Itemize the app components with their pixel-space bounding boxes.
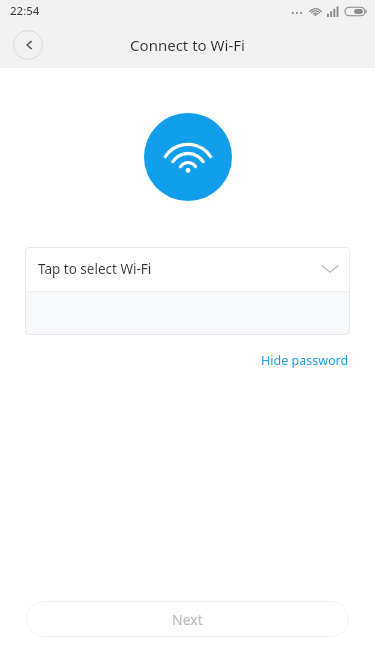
button[interactable]: Back: [13, 30, 43, 60]
staticText: 22:54: [10, 3, 40, 19]
button[interactable]: Next: [26, 601, 349, 637]
staticText: Hide password: [261, 352, 349, 369]
staticText: Tap to select Wi-Fi: [38, 260, 152, 278]
button[interactable]: Tap to select Wi-Fi: [25, 247, 350, 291]
button[interactable]: Hide password: [259, 349, 351, 372]
staticText: Connect to Wi-Fi: [130, 35, 245, 55]
staticText: Next: [172, 610, 203, 629]
button[interactable]: [25, 292, 350, 335]
